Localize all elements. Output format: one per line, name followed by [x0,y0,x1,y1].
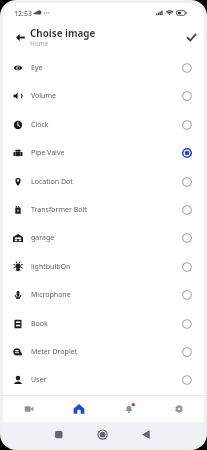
button[interactable]: Pipe Valve [3,139,204,167]
button[interactable]: Meter Droplet [3,338,204,366]
button[interactable]: Transformer Bolt [3,196,204,224]
button[interactable]: Clock [3,111,204,139]
button[interactable]: Book [3,310,204,338]
staticText: Choise image [30,27,96,40]
staticText: 12:53 [14,9,32,19]
button[interactable]: lightbulbOn [3,253,204,281]
staticText: Home [30,39,49,48]
staticText: Clock [31,120,49,130]
staticText: Microphone [31,290,71,300]
staticText: Meter Droplet [31,347,78,357]
button[interactable]: Confirm selection [181,27,201,47]
button[interactable]: Volume [3,82,204,110]
staticText: User [31,375,47,385]
button[interactable]: garage [3,224,204,252]
button[interactable]: Notifications [104,396,154,422]
button[interactable]: Home [54,396,104,422]
staticText: Book [31,319,48,329]
staticText: garage [31,233,55,243]
button[interactable]: Location Dot [3,168,204,196]
staticText: lightbulbOn [31,262,71,272]
staticText: Transformer Bolt [31,205,87,215]
button[interactable]: User [3,366,204,394]
staticText: Location Dot [31,177,73,187]
button[interactable]: Back [10,27,31,48]
staticText: Pipe Valve [31,148,65,158]
button[interactable]: Microphone [3,281,204,309]
staticText: Volume [31,91,56,101]
button[interactable]: Settings [154,396,204,422]
button[interactable]: Eye [3,54,204,82]
staticText: Eye [31,63,43,73]
button[interactable]: Video [3,396,54,422]
